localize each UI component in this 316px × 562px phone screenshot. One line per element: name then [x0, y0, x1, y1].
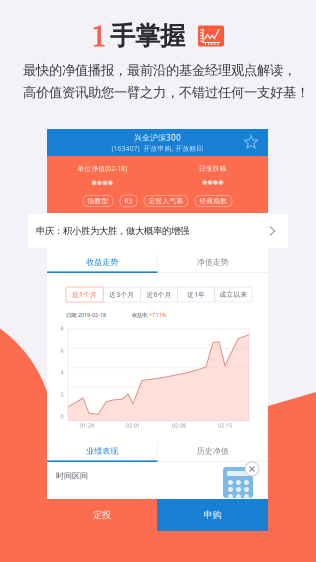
staticText: 02-01	[126, 422, 140, 429]
staticText: 收益走势	[86, 257, 118, 267]
staticText: 近1年	[187, 290, 205, 299]
staticText: 01-24	[80, 422, 94, 429]
staticText: 成立以来	[219, 290, 247, 299]
button[interactable]: 历史净值	[157, 440, 268, 462]
button[interactable]: 近3个月	[103, 287, 140, 302]
staticText: 8	[60, 325, 63, 332]
button[interactable]: 近6个月	[140, 287, 178, 302]
staticText: 近1个月	[72, 290, 97, 299]
staticText: 4	[60, 369, 63, 376]
staticText: 单位净值(02-18)	[77, 164, 127, 173]
button[interactable]: 收益走势	[47, 251, 157, 273]
button[interactable]: 申购	[157, 499, 268, 531]
staticText: 日期: 2019-02-18	[66, 311, 106, 319]
staticText: 1	[91, 13, 106, 59]
staticText: 手掌握	[110, 20, 185, 51]
staticText: 近6个月	[146, 290, 171, 299]
staticText: (163407) 开放申购, 开放赎回	[111, 144, 203, 153]
staticText: +7.11%	[149, 311, 166, 319]
staticText: 02-08	[172, 422, 186, 429]
staticText: 近3个月	[109, 290, 134, 299]
staticText: 时间区间	[56, 471, 88, 481]
button[interactable]: 近1年	[178, 287, 215, 302]
staticText: 日涨跌幅	[199, 164, 227, 172]
staticText: 02-15	[218, 422, 232, 429]
staticText: 业绩表现	[86, 446, 118, 456]
staticText: R3	[124, 196, 132, 205]
button[interactable]: 定投	[47, 499, 157, 531]
button[interactable]: 净值走势	[157, 251, 268, 273]
staticText: 最快的净值播报，最前沿的基金经理观点解读，	[23, 62, 296, 78]
button[interactable]: 近1个月	[66, 287, 103, 302]
staticText: 兴全沪深300	[134, 132, 181, 143]
staticText: 历史净值	[197, 446, 229, 456]
staticText: 定投	[93, 509, 111, 521]
staticText: 净值走势	[197, 257, 229, 267]
staticText: 高价值资讯助您一臂之力，不错过任何一支好基！	[23, 84, 309, 101]
staticText: 定投人气幕	[148, 197, 183, 205]
staticText: 申购	[203, 509, 221, 521]
staticText: 0	[60, 413, 63, 420]
button[interactable]: 成立以来	[215, 287, 252, 302]
button[interactable]: 业绩表现	[47, 440, 157, 462]
staticText: 经典指数	[199, 197, 227, 205]
staticText: 2	[60, 391, 63, 398]
staticText: 6	[60, 347, 63, 354]
staticText: 申庆：积小胜为大胜，做大概率的增强	[36, 225, 189, 237]
button[interactable]: 申庆：积小胜为大胜，做大概率的增强	[28, 214, 288, 248]
staticText: 指数型	[87, 197, 108, 205]
staticText: 收益率:	[132, 311, 149, 319]
